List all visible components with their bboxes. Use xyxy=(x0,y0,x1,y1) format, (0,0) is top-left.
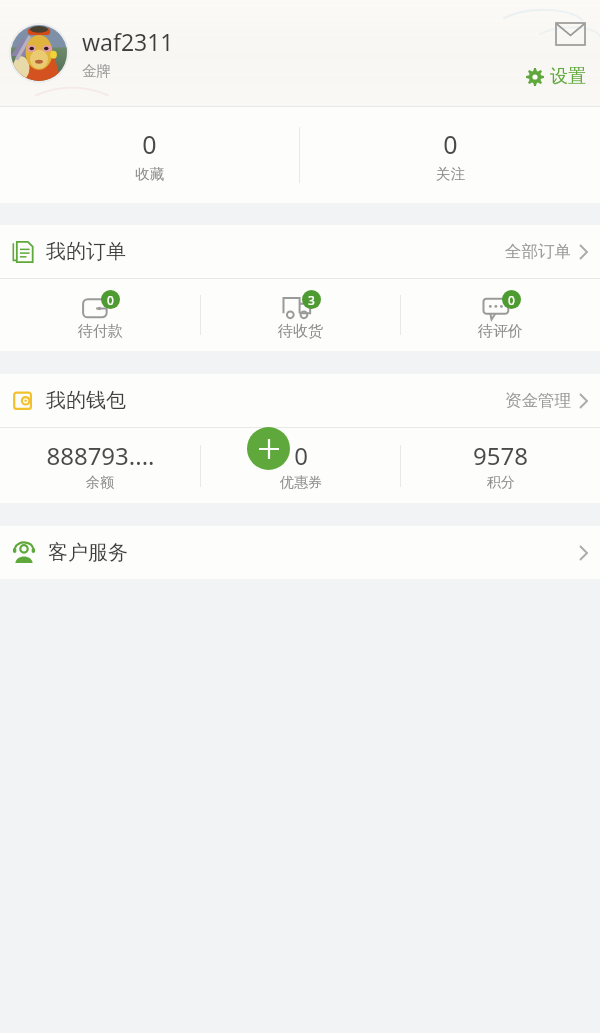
button[interactable]: 9578 xyxy=(401,428,600,503)
button[interactable]: Add xyxy=(247,427,290,470)
staticText: 3 xyxy=(308,292,315,308)
staticText: 资金管理 xyxy=(505,390,571,411)
button[interactable]: 我的订单 xyxy=(0,225,600,278)
button[interactable]: 0 xyxy=(0,279,200,351)
staticText: 我的订单 xyxy=(46,239,126,264)
staticText: 余额 xyxy=(86,474,114,492)
button[interactable]: Messages xyxy=(552,19,588,49)
staticText: waf2311 xyxy=(82,26,174,57)
button[interactable]: 0 xyxy=(401,279,600,351)
staticText: 0 xyxy=(107,292,114,308)
staticText: 888793.... xyxy=(46,439,155,472)
staticText: 积分 xyxy=(487,474,515,492)
button[interactable]: 3 xyxy=(201,279,400,351)
button[interactable]: 888793.... xyxy=(0,428,200,503)
button[interactable]: 设置 xyxy=(524,63,588,90)
staticText: 待评价 xyxy=(478,322,523,341)
staticText: 0 xyxy=(508,292,515,308)
staticText: 待收货 xyxy=(278,322,323,341)
staticText: 待付款 xyxy=(78,322,123,341)
staticText: 全部订单 xyxy=(505,241,571,262)
staticText: 0 xyxy=(443,127,458,161)
button[interactable]: 0 xyxy=(0,107,299,203)
staticText: 关注 xyxy=(436,165,465,183)
staticText: 优惠券 xyxy=(280,474,322,492)
staticText: 客户服务 xyxy=(48,540,128,565)
button[interactable]: Avatar xyxy=(9,23,69,83)
staticText: 我的钱包 xyxy=(46,388,126,413)
staticText: 收藏 xyxy=(135,165,164,183)
staticText: 金牌 xyxy=(82,62,111,80)
staticText: 0 xyxy=(142,127,157,161)
button[interactable]: 0 xyxy=(300,107,600,203)
staticText: 设置 xyxy=(550,65,586,88)
button[interactable]: 0 xyxy=(201,428,400,503)
staticText: 9578 xyxy=(473,439,528,472)
button[interactable]: 我的钱包 xyxy=(0,374,600,427)
staticText: 0 xyxy=(294,439,308,472)
button[interactable]: 客户服务 xyxy=(0,526,600,579)
